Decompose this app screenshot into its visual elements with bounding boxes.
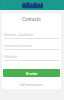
button[interactable]: Correo electronico [4, 44, 59, 50]
button[interactable]: LaFrontera.com [2, 83, 61, 87]
staticText: Telefono [4, 55, 17, 59]
staticText: Nombre y Apellidos [4, 33, 34, 37]
button[interactable]: Menu [3, 3, 7, 7]
staticText: Correo electronico [4, 44, 32, 48]
staticText: Enviar [26, 71, 38, 76]
staticText: Contacto [2, 16, 61, 22]
button[interactable]: Enviar [3, 69, 60, 77]
button[interactable]: Nombre y Apellidos [4, 33, 59, 39]
button[interactable]: Telefono [4, 55, 59, 61]
